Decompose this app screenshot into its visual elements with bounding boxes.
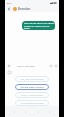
- button[interactable]: Yes, still on for seven!: [15, 76, 49, 82]
- button[interactable]: Can we make it eight?: [15, 84, 49, 90]
- staticText: Type a message: [17, 64, 35, 67]
- button[interactable]: Sorry, I can't tonight: [15, 92, 49, 98]
- staticText: Yes, still on for seven!: [20, 78, 44, 81]
- staticText: Sorry, I can't tonight: [21, 94, 43, 97]
- button[interactable]: Toolbar action: [47, 109, 53, 115]
- button[interactable]: Emoji: [48, 63, 53, 68]
- button[interactable]: Hey! Are we still on for dinner tonight …: [22, 21, 55, 30]
- staticText: I'll message you later: [21, 102, 44, 105]
- staticText: Hey! Are we still on for dinner tonight …: [24, 22, 55, 30]
- button[interactable]: Add attachment: [6, 63, 11, 68]
- button[interactable]: Magic compose: [6, 69, 13, 76]
- staticText: Can we make it eight?: [20, 86, 44, 89]
- staticText: 9:41: [7, 1, 12, 4]
- button[interactable]: Camera: [53, 63, 58, 68]
- button[interactable]: Toolbar action: [35, 109, 41, 115]
- button[interactable]: I'll message you later: [15, 100, 49, 106]
- button[interactable]: Toolbar action: [23, 109, 29, 115]
- button[interactable]: Toolbar action: [11, 109, 17, 115]
- staticText: Brandon: [18, 7, 31, 11]
- button[interactable]: Back: [5, 5, 12, 12]
